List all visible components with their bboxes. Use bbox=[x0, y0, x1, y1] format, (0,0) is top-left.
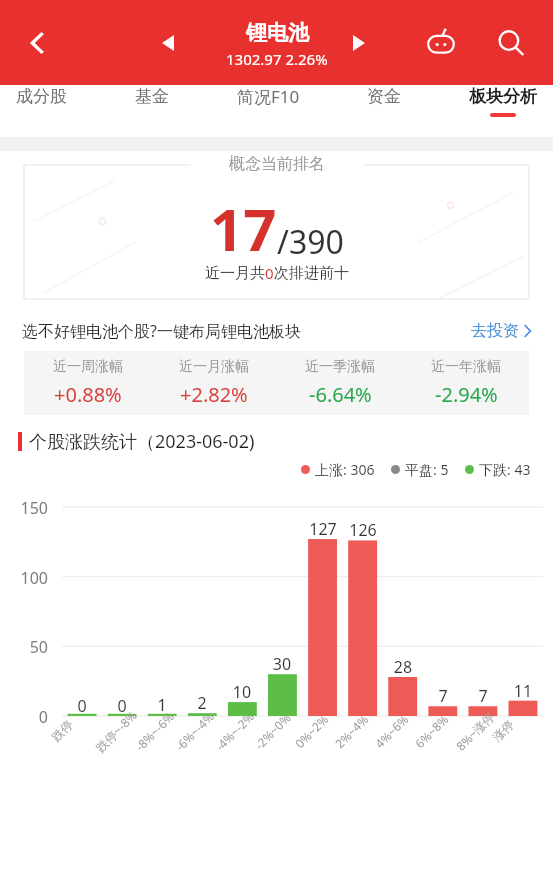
staticText: 基金 bbox=[135, 86, 169, 107]
staticText: 板块分析 bbox=[469, 86, 537, 107]
staticText: 近一季涨幅 bbox=[305, 358, 375, 376]
staticText: 4%~6% bbox=[371, 711, 412, 751]
button[interactable]: Back bbox=[10, 15, 66, 71]
staticText: 17 bbox=[210, 189, 277, 268]
staticText: 127 bbox=[300, 518, 346, 540]
staticText: 10 bbox=[219, 681, 265, 703]
staticText: 平盘: 5 bbox=[405, 460, 449, 479]
button[interactable]: 简况F10 bbox=[237, 85, 300, 118]
staticText: 上涨: 306 bbox=[315, 460, 375, 479]
staticText: 7 bbox=[420, 685, 466, 707]
staticText: +0.88% bbox=[54, 381, 122, 408]
staticText: 28 bbox=[380, 656, 426, 678]
staticText: 近一月涨幅 bbox=[179, 358, 249, 376]
staticText: 126 bbox=[340, 519, 386, 541]
staticText: 150 bbox=[2, 497, 48, 519]
button[interactable]: 基金 bbox=[135, 86, 169, 117]
button[interactable]: 选不好锂电池个股?一键布局锂电池板块 bbox=[22, 311, 531, 351]
staticText: 6%~8% bbox=[411, 711, 452, 751]
staticText: -6%~-4% bbox=[171, 708, 217, 754]
staticText: 近一年涨幅 bbox=[431, 358, 501, 376]
staticText: -4%~-2% bbox=[211, 708, 257, 754]
button[interactable]: Search bbox=[485, 17, 537, 69]
staticText: 近一月共 bbox=[205, 264, 265, 283]
staticText: 跌停~-8% bbox=[92, 707, 140, 755]
staticText: 下跌: 43 bbox=[479, 460, 531, 479]
button[interactable]: Next sector bbox=[337, 21, 381, 65]
staticText: 选不好锂电池个股?一键布局锂电池板块 bbox=[22, 320, 301, 342]
button[interactable]: 近一年涨幅 bbox=[403, 358, 529, 408]
staticText: 2%~4% bbox=[331, 711, 372, 751]
staticText: 100 bbox=[2, 567, 48, 589]
staticText: -2.94% bbox=[435, 381, 498, 408]
button[interactable]: 近一周涨幅 bbox=[24, 358, 151, 408]
staticText: -8%~-6% bbox=[131, 708, 177, 754]
button[interactable]: 板块分析 bbox=[469, 86, 537, 117]
staticText: 成分股 bbox=[16, 86, 67, 107]
staticText: 30 bbox=[259, 653, 305, 675]
button[interactable]: 近一季涨幅 bbox=[277, 358, 403, 408]
staticText: 次排进前十 bbox=[274, 264, 349, 283]
staticText: 0 bbox=[99, 695, 145, 717]
staticText: 2 bbox=[179, 692, 225, 714]
staticText: +2.82% bbox=[180, 381, 248, 408]
staticText: 个股涨跌统计（2023-06-02) bbox=[29, 429, 255, 454]
button[interactable]: 近一月涨幅 bbox=[151, 358, 277, 408]
button[interactable]: 资金 bbox=[367, 86, 401, 117]
staticText: 资金 bbox=[367, 86, 401, 107]
staticText: 涨停 bbox=[489, 717, 517, 744]
staticText: 跌停 bbox=[48, 717, 76, 744]
staticText: -6.64% bbox=[309, 381, 372, 408]
button[interactable]: Assistant bbox=[415, 17, 467, 69]
staticText: /390 bbox=[277, 220, 344, 264]
staticText: 7 bbox=[460, 685, 506, 707]
staticText: 0 bbox=[59, 695, 105, 717]
staticText: 1 bbox=[139, 694, 185, 716]
staticText: 8%~涨停 bbox=[452, 708, 498, 754]
staticText: 50 bbox=[2, 636, 48, 658]
staticText: 0 bbox=[2, 706, 48, 728]
button[interactable]: Previous sector bbox=[146, 21, 190, 65]
staticText: 去投资 bbox=[471, 321, 519, 341]
staticText: 1302.97 2.26% bbox=[226, 49, 328, 69]
staticText: 11 bbox=[500, 680, 546, 702]
staticText: 锂电池 bbox=[246, 20, 309, 46]
staticText: 0 bbox=[265, 263, 274, 283]
staticText: 近一周涨幅 bbox=[53, 358, 123, 376]
staticText: -2%~0% bbox=[251, 709, 294, 752]
staticText: 0%~2% bbox=[291, 711, 332, 751]
button[interactable]: 成分股 bbox=[16, 86, 67, 117]
staticText: 概念当前排名 bbox=[229, 154, 325, 174]
staticText: 简况F10 bbox=[237, 85, 300, 108]
